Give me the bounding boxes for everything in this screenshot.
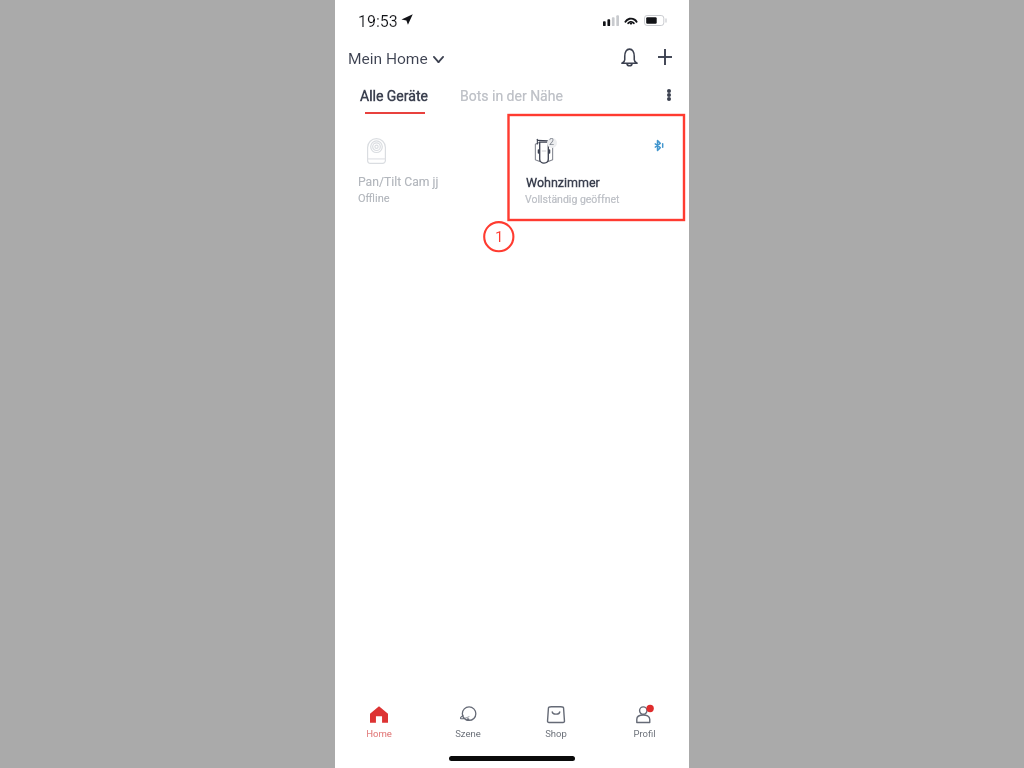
staticText: Offline xyxy=(358,192,390,205)
staticText: Vollständig geöffnet xyxy=(525,193,620,205)
staticText: Alle Geräte xyxy=(360,88,428,104)
staticText: Mein Home xyxy=(348,50,428,68)
staticText: 1 xyxy=(495,228,504,246)
button[interactable]: Notifications xyxy=(612,40,646,74)
button[interactable]: Pan/Tilt Cam jj xyxy=(343,118,508,217)
staticText: Wohnzimmer xyxy=(526,175,600,190)
button[interactable]: Szene xyxy=(438,698,498,744)
button[interactable]: Bots in der Nähe xyxy=(451,84,572,108)
staticText: 19:53 xyxy=(358,12,398,31)
button[interactable]: Alle Geräte xyxy=(351,84,437,108)
button[interactable]: Mein Home xyxy=(342,46,450,72)
staticText: Home xyxy=(366,728,392,739)
staticText: Shop xyxy=(545,728,567,739)
staticText: Profil xyxy=(633,728,656,739)
staticText: Pan/Tilt Cam jj xyxy=(358,175,439,189)
button[interactable]: More options xyxy=(654,81,684,109)
button[interactable]: Home xyxy=(349,698,409,744)
button[interactable]: Add device xyxy=(648,40,682,74)
staticText: Bots in der Nähe xyxy=(460,88,563,104)
button[interactable]: Shop xyxy=(526,698,586,744)
staticText: 2 xyxy=(549,137,555,147)
button[interactable]: Profil xyxy=(614,698,674,744)
staticText: Szene xyxy=(455,728,481,739)
button[interactable]: 2 xyxy=(509,118,681,217)
